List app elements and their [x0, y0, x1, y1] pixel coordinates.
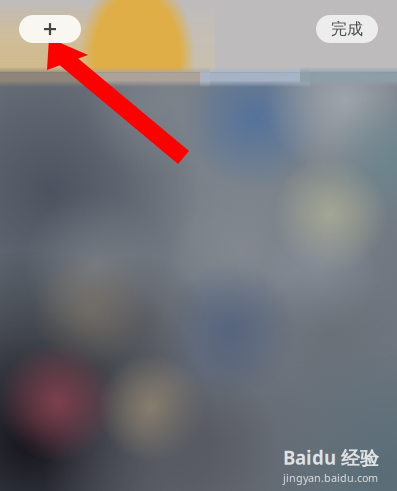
staticText: jingyan.baidu.com [283, 471, 378, 485]
button[interactable]: 完成 [316, 15, 378, 43]
staticText: Baidu 经验 [283, 445, 379, 470]
button[interactable]: Add [19, 15, 81, 43]
staticText: 完成 [331, 19, 363, 39]
